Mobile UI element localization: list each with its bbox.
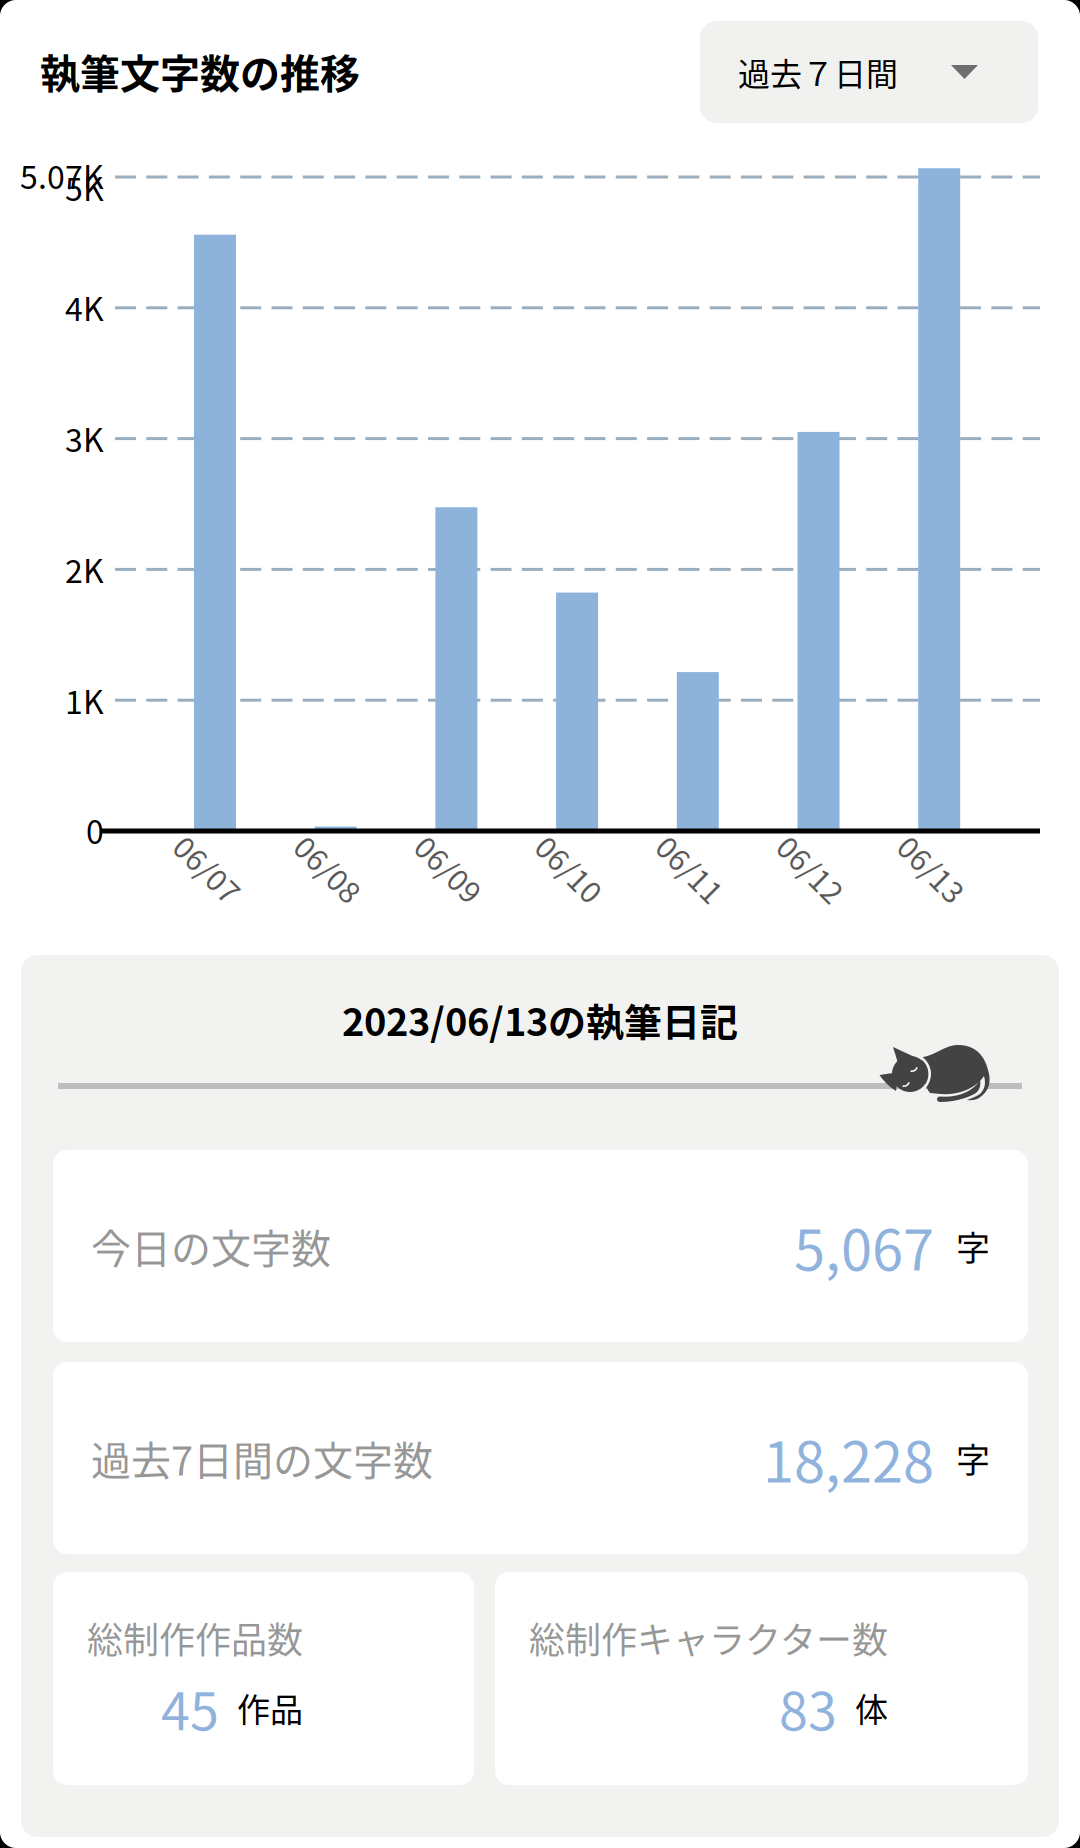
button[interactable]: 総制作作品数 bbox=[53, 1572, 474, 1785]
staticText: 06/11 bbox=[639, 875, 719, 919]
staticText: 5K bbox=[65, 164, 104, 210]
staticText: 06/08 bbox=[277, 875, 357, 919]
button[interactable]: 総制作キャラクター数 bbox=[495, 1572, 1028, 1785]
button[interactable]: 過去7日間の文字数 bbox=[53, 1362, 1028, 1554]
staticText: 字 bbox=[956, 1221, 990, 1271]
staticText: 06/10 bbox=[518, 875, 598, 919]
staticText: 18,228 bbox=[763, 1417, 934, 1499]
staticText: 今日の文字数 bbox=[91, 1217, 331, 1275]
staticText: 83 bbox=[779, 1670, 837, 1745]
staticText: 06/12 bbox=[759, 875, 839, 919]
staticText: 1K bbox=[65, 677, 104, 723]
staticText: 体 bbox=[855, 1684, 888, 1731]
button[interactable]: 今日の文字数 bbox=[53, 1150, 1028, 1342]
staticText: 執筆文字数の推移 bbox=[40, 42, 360, 100]
staticText: 5,067 bbox=[794, 1205, 934, 1287]
staticText: 06/09 bbox=[397, 875, 477, 919]
staticText: 過去7日間の文字数 bbox=[91, 1429, 433, 1487]
staticText: 字 bbox=[956, 1433, 990, 1483]
staticText: 作品 bbox=[237, 1684, 303, 1731]
staticText: 過去７日間 bbox=[738, 49, 898, 95]
staticText: 06/07 bbox=[156, 875, 236, 919]
staticText: 5.07K bbox=[20, 152, 104, 198]
staticText: 2K bbox=[65, 546, 104, 592]
staticText: 3K bbox=[65, 415, 104, 461]
staticText: 4K bbox=[65, 284, 104, 330]
staticText: 総制作作品数 bbox=[87, 1612, 303, 1664]
button[interactable]: 過去７日間 bbox=[700, 21, 1038, 123]
staticText: 2023/06/13の執筆日記 bbox=[342, 992, 738, 1047]
staticText: 0 bbox=[86, 807, 104, 853]
staticText: 総制作キャラクター数 bbox=[529, 1612, 888, 1664]
staticText: 06/13 bbox=[880, 875, 960, 919]
staticText: 45 bbox=[161, 1670, 219, 1745]
